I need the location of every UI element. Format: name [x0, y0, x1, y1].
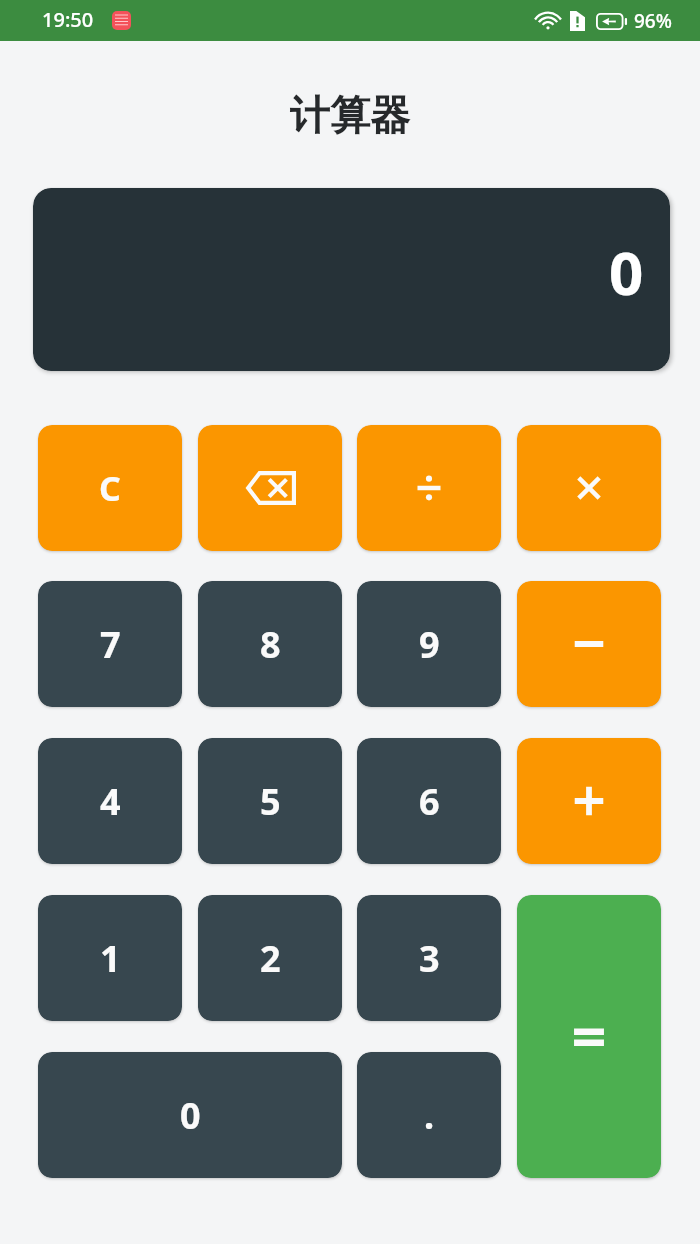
staticText: 0: [180, 1091, 201, 1140]
staticText: 2: [260, 934, 281, 983]
button[interactable]: Backspace: [198, 425, 342, 551]
button[interactable]: Multiply: [517, 425, 661, 551]
button[interactable]: 9: [357, 581, 501, 707]
staticText: C: [99, 465, 121, 511]
staticText: 96%: [634, 8, 672, 34]
button[interactable]: Decimal point: [357, 1052, 501, 1178]
staticText: 8: [260, 620, 281, 669]
staticText: 6: [419, 777, 440, 826]
button[interactable]: 7: [38, 581, 182, 707]
staticText: 1: [100, 934, 121, 983]
staticText: 9: [419, 620, 440, 669]
staticText: 计算器: [290, 90, 410, 140]
button[interactable]: 6: [357, 738, 501, 864]
staticText: 19:50: [42, 6, 94, 33]
staticText: 0: [609, 231, 644, 313]
button[interactable]: 1: [38, 895, 182, 1021]
button[interactable]: 8: [198, 581, 342, 707]
button[interactable]: Equals: [517, 895, 661, 1178]
button[interactable]: 4: [38, 738, 182, 864]
button[interactable]: 2: [198, 895, 342, 1021]
button[interactable]: Minus: [517, 581, 661, 707]
button[interactable]: 5: [198, 738, 342, 864]
button[interactable]: 0: [38, 1052, 342, 1178]
staticText: 5: [260, 777, 281, 826]
staticText: 3: [419, 934, 440, 983]
button[interactable]: Divide: [357, 425, 501, 551]
staticText: 7: [100, 620, 121, 669]
button[interactable]: C: [38, 425, 182, 551]
staticText: 4: [100, 777, 121, 826]
button[interactable]: Plus: [517, 738, 661, 864]
staticText: .: [424, 1091, 435, 1140]
button[interactable]: 3: [357, 895, 501, 1021]
